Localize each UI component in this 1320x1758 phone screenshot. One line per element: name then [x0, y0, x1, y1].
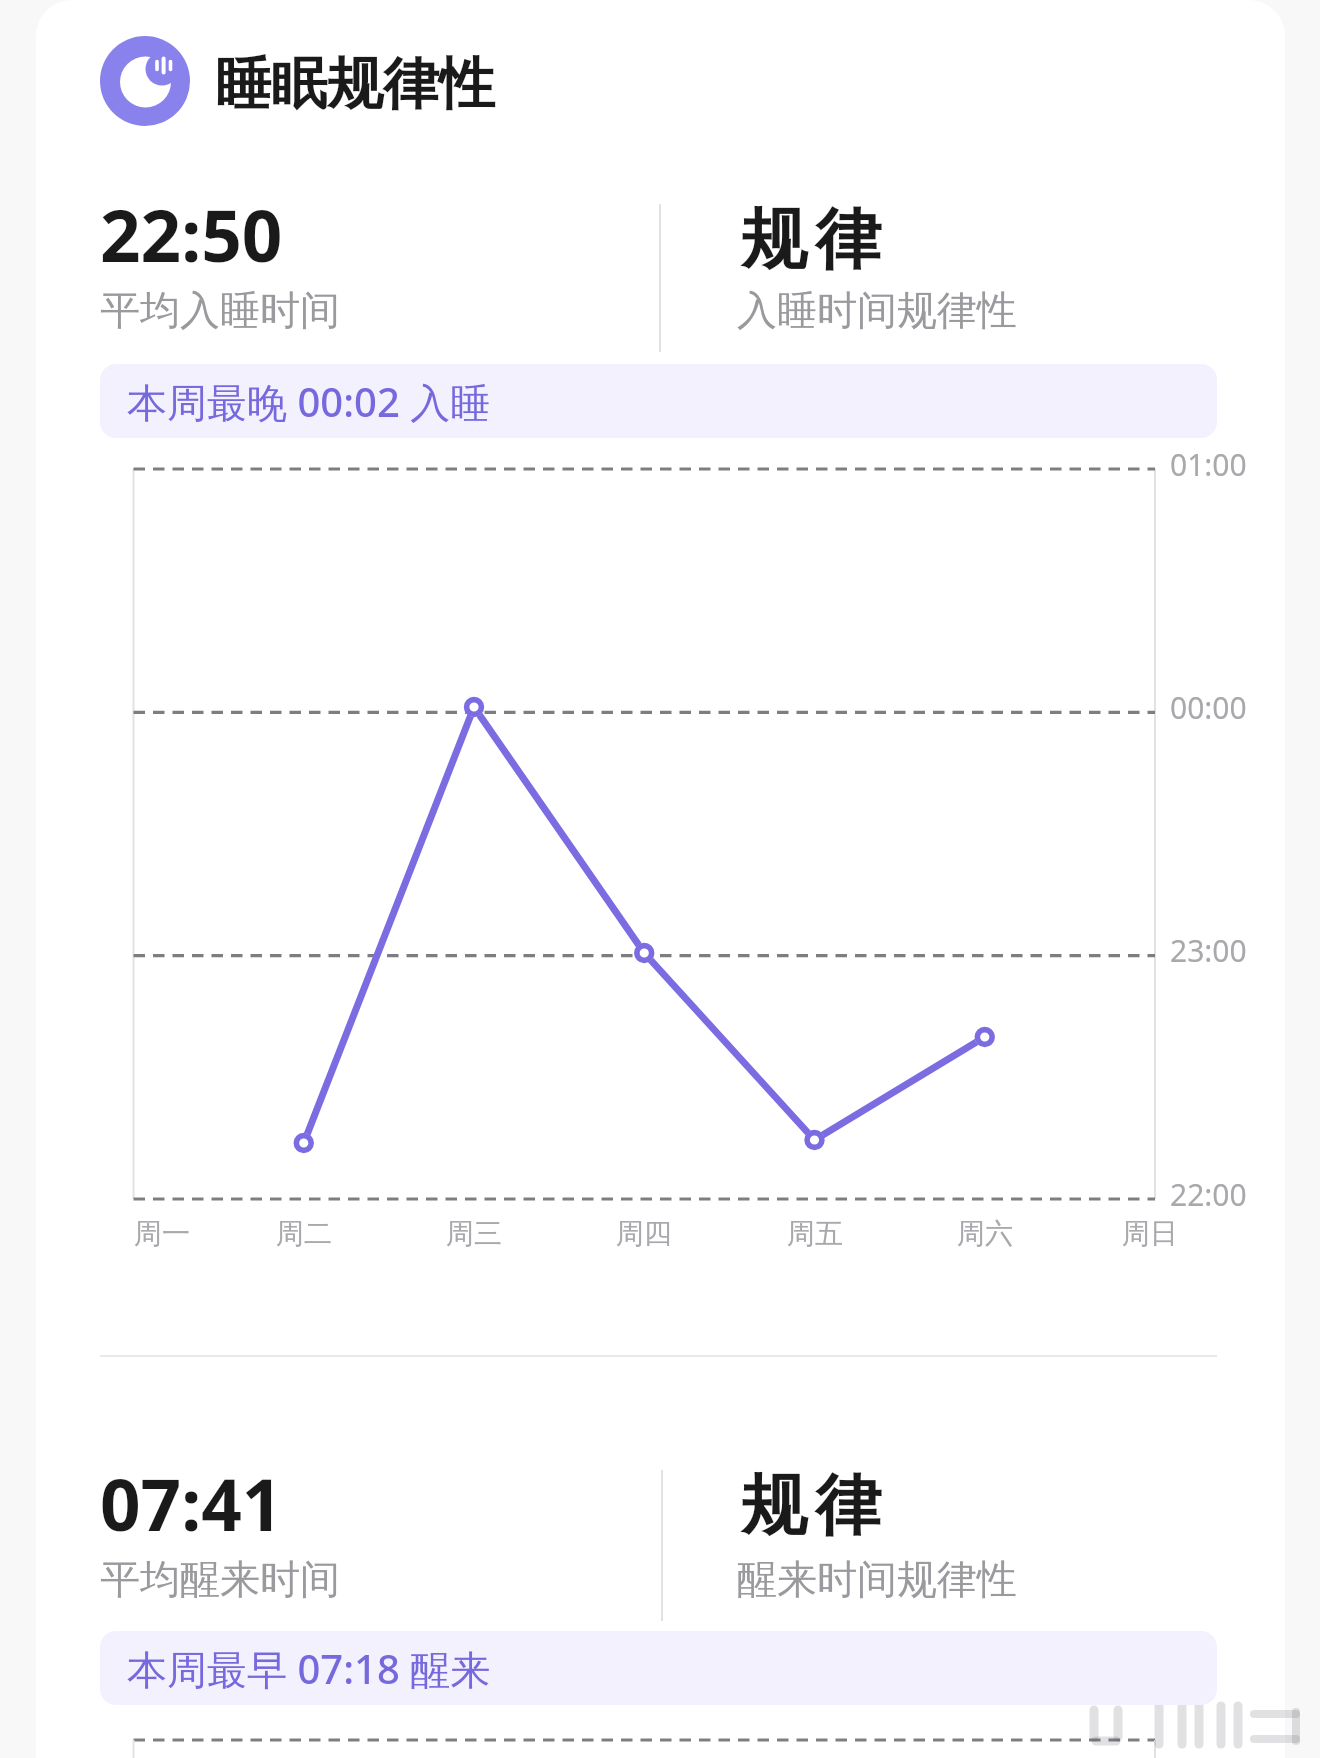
staticText: 22:00 [1170, 1174, 1247, 1215]
staticText: 入睡时间规律性 [737, 285, 1017, 335]
staticText: 周日 [1122, 1216, 1178, 1251]
staticText: 规律 [737, 1464, 885, 1547]
staticText: 睡眠规律性 [215, 49, 495, 120]
staticText: 01:00 [1170, 444, 1247, 485]
staticText: 23:00 [1170, 930, 1247, 971]
staticText: 周二 [276, 1216, 332, 1251]
staticText: 周六 [957, 1216, 1013, 1251]
staticText: 本周最晚 00:02 入睡 [127, 374, 491, 429]
staticText: 平均醒来时间 [100, 1554, 340, 1604]
staticText: 醒来时间规律性 [737, 1554, 1017, 1604]
staticText: 周五 [787, 1216, 843, 1251]
staticText: 平均入睡时间 [100, 285, 340, 335]
staticText: 周四 [616, 1216, 672, 1251]
staticText: 00:00 [1170, 687, 1247, 728]
staticText: 07:41 [100, 1455, 283, 1552]
button[interactable]: 本周最早 07:18 醒来 [100, 1631, 1217, 1705]
button[interactable]: 本周最晚 00:02 入睡 [100, 364, 1217, 438]
staticText: 22:50 [100, 186, 283, 283]
staticText: 规律 [737, 198, 885, 281]
staticText: 周三 [446, 1216, 502, 1251]
staticText: 本周最早 07:18 醒来 [127, 1641, 491, 1696]
staticText: 周一 [134, 1216, 190, 1251]
